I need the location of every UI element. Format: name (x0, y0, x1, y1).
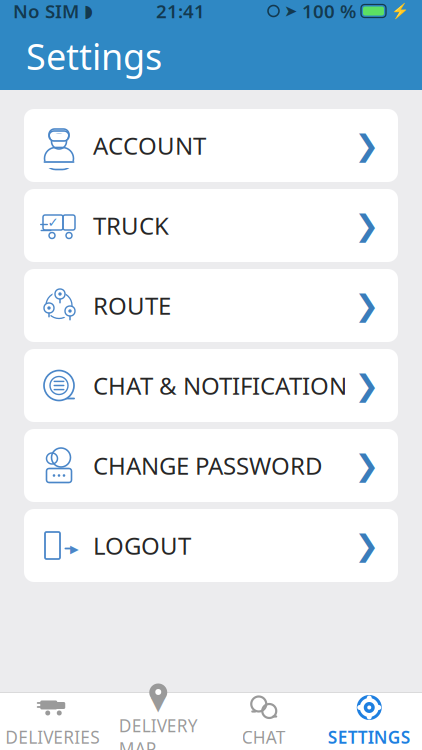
button[interactable]: ✓ (24, 189, 398, 262)
button[interactable]: CHAT (211, 693, 316, 750)
staticText: CHANGE PASSWORD (93, 450, 323, 481)
staticText: ❯ (354, 289, 379, 322)
staticText: DELIVERY MAP (119, 714, 198, 750)
staticText: ❯ (354, 369, 379, 402)
staticText: ▸ (70, 539, 79, 558)
staticText: ⚡ (391, 3, 409, 19)
staticText: ➤ (284, 2, 297, 20)
button[interactable]: DELIVERIES (0, 693, 105, 750)
button[interactable]: ▸ (24, 509, 398, 582)
button[interactable]: ROUTE (24, 269, 398, 342)
staticText: CHAT (242, 725, 286, 748)
staticText: SETTINGS (328, 725, 411, 748)
staticText: 21:41 (156, 0, 205, 23)
staticText: ✓ (47, 215, 58, 230)
staticText: ▾ (151, 686, 166, 719)
staticText: ❯ (354, 529, 379, 562)
staticText: ◗ (84, 1, 93, 21)
button[interactable]: SETTINGS (316, 693, 422, 750)
button[interactable]: ACCOUNT (24, 109, 398, 182)
staticText: Settings (26, 32, 162, 80)
staticText: DELIVERIES (5, 725, 100, 748)
button[interactable]: CHANGE PASSWORD (24, 429, 398, 502)
staticText: CHAT & NOTIFICATION (93, 370, 347, 401)
staticText: 100 % (302, 0, 356, 23)
staticText: ❯ (354, 129, 379, 162)
staticText: ROUTE (93, 290, 171, 321)
staticText: ACCOUNT (93, 130, 206, 161)
staticText: ❯ (354, 449, 379, 482)
staticText: ❯ (354, 209, 379, 242)
button[interactable]: ▾ (105, 693, 211, 750)
staticText: TRUCK (93, 210, 169, 241)
staticText: No SIM (13, 0, 79, 23)
button[interactable]: CHAT & NOTIFICATION (24, 349, 398, 422)
staticText: LOGOUT (93, 530, 191, 561)
